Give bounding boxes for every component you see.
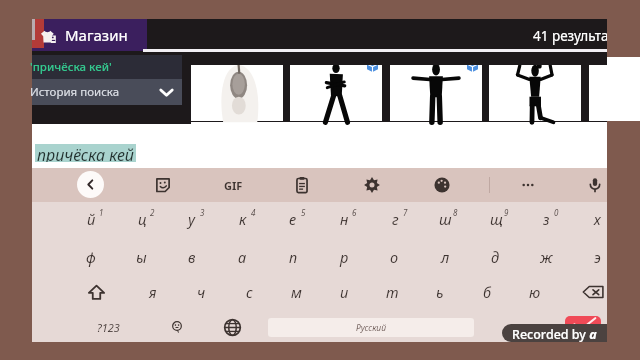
button[interactable] [589,57,640,121]
staticText: й [87,209,96,229]
button[interactable]: н [319,202,369,236]
staticText: а [238,247,247,267]
staticText: ф [86,247,96,267]
staticText: о [390,247,399,267]
staticText: ю [529,282,541,302]
staticText: в [188,247,196,267]
staticText: е [289,209,297,229]
button[interactable]: з [521,202,571,236]
button[interactable]: л [420,240,470,274]
staticText: Магазин [65,25,128,45]
button[interactable]: д [470,240,520,274]
staticText: 3 [200,207,205,218]
staticText: причёска кей [37,144,134,162]
staticText: 6 [352,207,357,218]
button[interactable]: т [367,275,417,309]
staticText: ь [436,282,444,302]
button[interactable]: о [369,240,419,274]
button[interactable]: п [268,240,318,274]
button[interactable]: в [167,240,217,274]
button[interactable]: Русский [268,318,474,337]
staticText: и [340,282,349,302]
staticText: щ [490,209,503,229]
button[interactable]: б [462,275,512,309]
staticText: a [586,326,597,342]
button[interactable] [290,57,382,121]
button[interactable]: 'причёска кей' [32,55,182,79]
staticText: ы [136,247,147,267]
staticText: х [594,209,601,229]
staticText: б [483,282,492,302]
staticText: 1 [99,207,104,218]
button[interactable]: с [224,275,274,309]
button[interactable]: ь [415,275,465,309]
button[interactable] [191,57,283,121]
button[interactable]: Clipboard [291,174,313,196]
button[interactable]: Backspace [568,275,618,309]
button[interactable]: а [217,240,267,274]
button[interactable]: История поиска [32,79,182,105]
staticText: ц [138,209,147,229]
staticText: 8 [453,207,458,218]
staticText: р [340,247,349,267]
staticText: 4 [251,207,256,218]
button[interactable]: г [370,202,420,236]
staticText: т [386,282,399,302]
staticText: ж [540,247,553,267]
button[interactable]: я [128,275,178,309]
button[interactable]: ф [66,240,116,274]
staticText: я [149,282,157,302]
button[interactable]: Shift [71,275,121,309]
button[interactable]: More options [517,174,539,196]
button[interactable]: ы [116,240,166,274]
button[interactable]: м [271,275,321,309]
button[interactable] [489,57,581,121]
button[interactable]: е [268,202,318,236]
button[interactable]: GIF [221,176,245,194]
staticText: 0 [554,207,559,218]
staticText: 2 [150,207,155,218]
button[interactable]: Back [77,171,104,198]
button[interactable]: ц [117,202,167,236]
button[interactable]: Emoji [152,174,174,196]
staticText: История поиска [30,84,120,100]
staticText: 'причёска кей' [30,59,112,75]
button[interactable]: э [572,240,622,274]
staticText: Русский [356,322,387,334]
button[interactable]: ш [420,202,470,236]
staticText: г [392,209,399,229]
button[interactable]: х [572,202,622,236]
staticText: п [289,247,298,267]
staticText: 41 результат [533,27,607,45]
button[interactable]: Change language [212,310,252,344]
staticText: у [188,209,196,229]
button[interactable]: ?123 [83,310,133,344]
button[interactable]: к [218,202,268,236]
button[interactable]: й [66,202,116,236]
staticText: ш [439,209,452,229]
button[interactable]: у [167,202,217,236]
staticText: н [340,209,349,229]
staticText: э [594,247,601,267]
button[interactable]: Emoji [157,310,197,344]
button[interactable]: ж [521,240,571,274]
staticText: с [246,282,253,302]
button[interactable]: Theme [431,174,453,196]
staticText: л [441,247,450,267]
button[interactable]: ч [176,275,226,309]
staticText: 5 [301,207,306,218]
staticText: з [543,209,550,229]
staticText: 7 [403,207,408,218]
button[interactable]: Settings [361,174,383,196]
button[interactable]: и [319,275,369,309]
staticText: ч [197,282,206,302]
button[interactable]: ю [510,275,560,309]
button[interactable] [390,57,482,121]
button[interactable]: щ [471,202,521,236]
staticText: GIF [224,178,243,193]
button[interactable]: р [319,240,369,274]
button[interactable]: Магазин [40,19,128,51]
button[interactable]: Voice input [584,174,606,196]
staticText: ?123 [97,320,120,335]
staticText: Recorded by [512,326,586,342]
